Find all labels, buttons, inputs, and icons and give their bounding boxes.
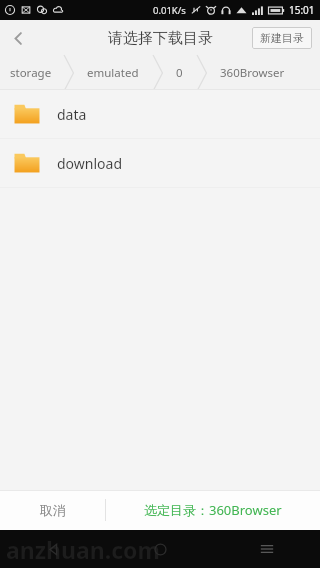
button[interactable]: download (0, 139, 320, 187)
staticText: anzhuan.com (6, 534, 160, 565)
staticText: 0 (176, 65, 183, 81)
staticText: storage (10, 65, 52, 81)
button[interactable]: Back (0, 20, 36, 56)
staticText: 0.01K/s (153, 4, 186, 17)
button[interactable]: data (0, 90, 320, 138)
staticText: 360Browser (220, 65, 285, 81)
button[interactable]: 取消 (0, 490, 105, 530)
button[interactable]: Home (138, 530, 182, 568)
staticText: 请选择下载目录 (108, 29, 213, 48)
button[interactable]: 360Browser (208, 56, 297, 90)
button[interactable]: emulated (75, 56, 151, 90)
button[interactable]: Menu (245, 530, 289, 568)
button[interactable]: storage (0, 56, 62, 90)
staticText: 15:01 (289, 3, 315, 17)
button[interactable]: 0 (164, 56, 195, 90)
staticText: download (57, 154, 123, 173)
staticText: 选定目录：360Browser (144, 501, 282, 519)
button[interactable]: Back (31, 530, 75, 568)
staticText: data (57, 105, 87, 124)
button[interactable]: 新建目录 (252, 27, 312, 49)
staticText: 新建目录 (260, 31, 304, 45)
staticText: emulated (87, 65, 139, 81)
button[interactable]: 选定目录：360Browser (106, 490, 320, 530)
staticText: 取消 (40, 502, 66, 518)
